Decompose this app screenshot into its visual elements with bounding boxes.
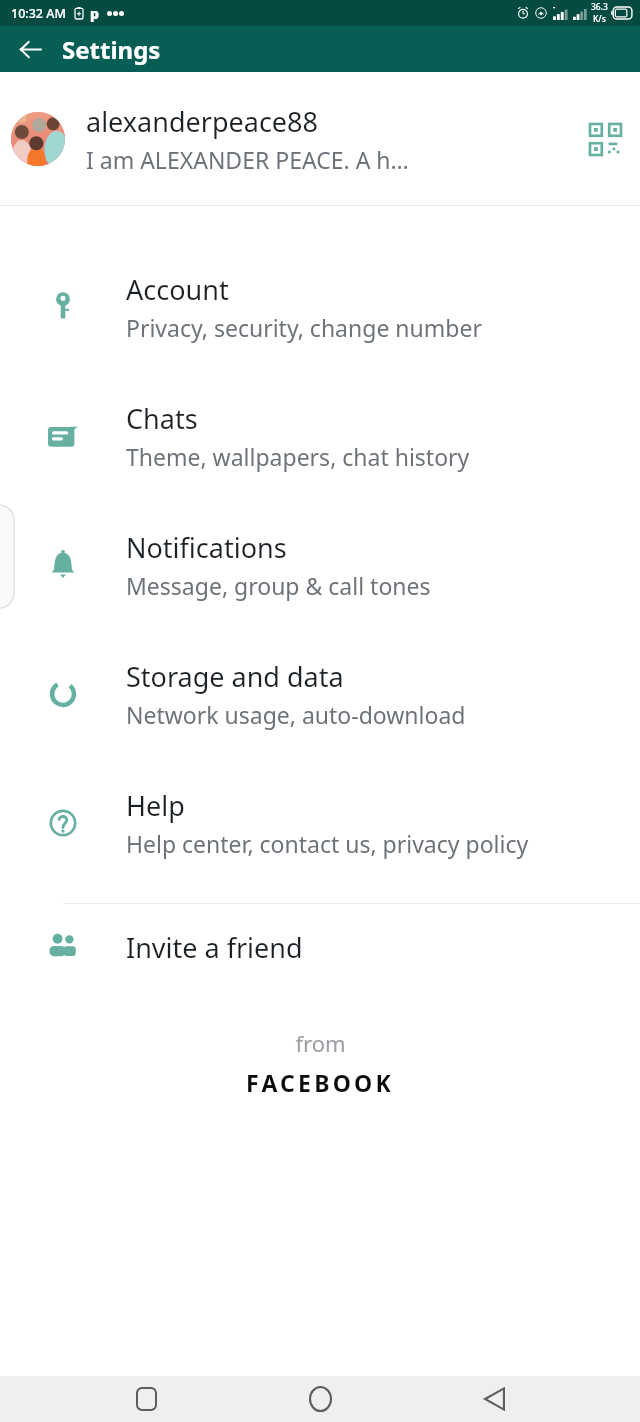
staticText: Help center, contact us, privacy policy [126, 828, 529, 859]
staticText: Privacy, security, change number [126, 312, 482, 343]
staticText: K/s [593, 13, 606, 25]
staticText: Message, group & call tones [126, 570, 431, 601]
button[interactable]: Back [6, 26, 54, 72]
button[interactable]: Back [466, 1376, 522, 1422]
staticText: Network usage, auto-download [126, 699, 466, 730]
staticText: I am ALEXANDER PEACE. A h… [86, 144, 409, 175]
staticText: Invite a friend [126, 929, 303, 966]
staticText: Notifications [126, 529, 287, 566]
button[interactable]: Chats [0, 371, 640, 500]
button[interactable]: alexanderpeace88 [0, 72, 640, 205]
button[interactable]: QR code [581, 115, 629, 163]
button[interactable]: Recent apps [118, 1376, 174, 1422]
button[interactable]: Help [0, 758, 640, 887]
staticText: FACEBOOK [246, 1067, 394, 1098]
staticText: Settings [62, 33, 161, 66]
staticText: Chats [126, 400, 198, 437]
staticText: Help [126, 787, 185, 824]
staticText: 10:32 AM [11, 5, 66, 22]
staticText: Account [126, 271, 229, 308]
staticText: Storage and data [126, 658, 344, 695]
staticText: from [295, 1028, 346, 1058]
button[interactable]: Storage and data [0, 629, 640, 758]
staticText: p [90, 4, 100, 23]
button[interactable]: Invite a friend [0, 904, 640, 990]
button[interactable]: Notifications [0, 500, 640, 629]
staticText: alexanderpeace88 [86, 103, 318, 140]
staticText: Theme, wallpapers, chat history [126, 441, 470, 472]
button[interactable]: Account [0, 242, 640, 371]
staticText: 36.3 [591, 1, 608, 13]
button[interactable]: Home [292, 1376, 348, 1422]
